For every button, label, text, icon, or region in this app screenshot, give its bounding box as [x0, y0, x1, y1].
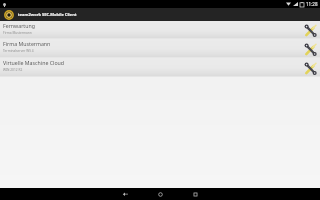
- staticText: Terminalserver WS 4: [3, 49, 34, 53]
- button[interactable]: Zurück: [119, 188, 131, 200]
- button[interactable]: Übersicht: [189, 188, 201, 200]
- button[interactable]: Einstellungen: [302, 41, 318, 57]
- staticText: Firma Mustermann: [3, 31, 32, 35]
- button[interactable]: Einstellungen: [302, 22, 318, 38]
- button[interactable]: Fernwartung: [0, 21, 320, 39]
- staticText: Virtuelle Maschine Cloud: [3, 59, 65, 66]
- staticText: Fernwartung: [3, 22, 35, 29]
- staticText: Firma Mustermann: [3, 40, 51, 47]
- button[interactable]: Startbildschirm: [154, 188, 166, 200]
- staticText: 11:28: [306, 1, 318, 7]
- staticText: WIN 2012 R2: [3, 68, 23, 72]
- button[interactable]: Einstellungen: [302, 60, 318, 76]
- button[interactable]: Virtuelle Maschine Cloud: [0, 58, 320, 77]
- staticText: team2work SEC-Mobile Client: [18, 12, 77, 17]
- button[interactable]: Firma Mustermann: [0, 39, 320, 58]
